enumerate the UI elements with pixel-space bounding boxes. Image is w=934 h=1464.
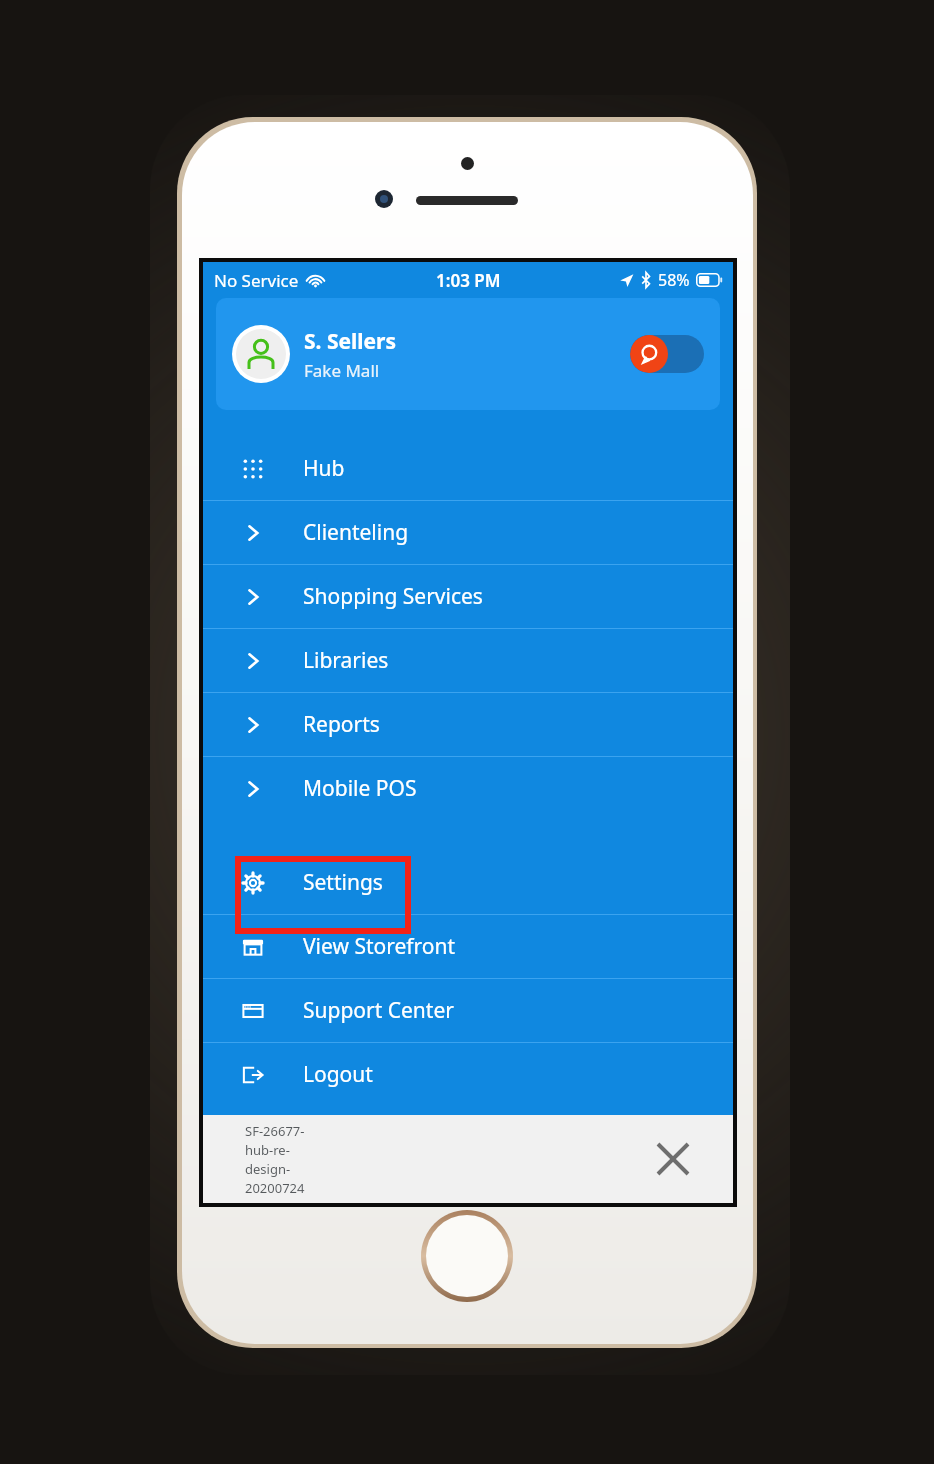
staticText: No Service <box>214 269 299 292</box>
button[interactable]: Reports <box>203 693 733 756</box>
button[interactable]: Home <box>421 1210 513 1302</box>
button[interactable]: Close <box>651 1137 695 1181</box>
staticText: S. Sellers <box>304 327 397 356</box>
staticText: Settings <box>303 868 383 897</box>
button[interactable]: Logout <box>203 1043 733 1106</box>
staticText: 1:03 PM <box>436 269 501 292</box>
button[interactable]: S. Sellers <box>216 298 720 410</box>
staticText: Mobile POS <box>303 774 417 803</box>
staticText: Fake Mall <box>304 359 380 382</box>
staticText: 58% <box>658 269 690 291</box>
staticText: SF-26677- hub-re- design- 20200724 <box>245 1122 305 1197</box>
staticText: View Storefront <box>303 932 456 961</box>
button[interactable]: Shopping Services <box>203 565 733 628</box>
button[interactable]: Chat toggle <box>630 335 704 373</box>
staticText: Support Center <box>303 996 454 1025</box>
staticText: Shopping Services <box>303 582 483 611</box>
staticText: Reports <box>303 710 380 739</box>
button[interactable]: Settings <box>203 851 733 914</box>
staticText: Hub <box>303 454 345 483</box>
button[interactable]: Libraries <box>203 629 733 692</box>
button[interactable]: Mobile POS <box>203 757 733 820</box>
button[interactable]: Support Center <box>203 979 733 1042</box>
button[interactable]: Clienteling <box>203 501 733 564</box>
button[interactable]: Hub <box>203 437 733 500</box>
staticText: Clienteling <box>303 518 409 547</box>
button[interactable]: View Storefront <box>203 915 733 978</box>
staticText: Libraries <box>303 646 389 675</box>
staticText: Logout <box>303 1060 373 1089</box>
